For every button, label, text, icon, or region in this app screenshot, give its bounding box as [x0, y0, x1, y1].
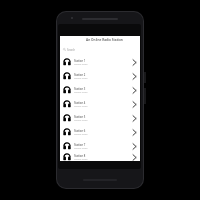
- other: Open station: [132, 73, 137, 80]
- other: Open station: [132, 143, 137, 150]
- staticText: Online radio: [74, 133, 88, 136]
- staticText: Station 1: [74, 59, 86, 63]
- button[interactable]: Station 5: [60, 111, 140, 125]
- staticText: Online radio: [74, 147, 88, 150]
- other: Open station: [132, 115, 137, 122]
- other: Open station: [132, 154, 137, 161]
- staticText: Online radio: [74, 119, 88, 122]
- staticText: Search: [67, 48, 76, 52]
- button[interactable]: Station 6: [60, 125, 140, 139]
- other: Open station: [132, 59, 137, 66]
- other: Search: [63, 48, 66, 51]
- staticText: Online radio: [74, 63, 88, 66]
- staticText: Station 4: [74, 101, 86, 105]
- staticText: Station 8: [74, 154, 86, 158]
- button[interactable]: Station 4: [60, 97, 140, 111]
- staticText: Online radio: [74, 91, 88, 94]
- staticText: An Online Radio Station: [86, 38, 123, 42]
- button[interactable]: Station 3: [60, 83, 140, 97]
- other: Open station: [132, 129, 137, 136]
- staticText: Station 7: [74, 143, 86, 147]
- other: Open station: [132, 87, 137, 94]
- staticText: Online radio: [74, 158, 88, 161]
- staticText: Online radio: [74, 105, 88, 108]
- staticText: Station 3: [74, 87, 86, 91]
- button[interactable]: Search: [60, 44, 140, 55]
- button[interactable]: Station 2: [60, 69, 140, 83]
- staticText: Station 2: [74, 73, 86, 77]
- other: Open station: [132, 101, 137, 108]
- button[interactable]: Station 1: [60, 55, 140, 69]
- staticText: Station 5: [74, 115, 86, 119]
- button[interactable]: Station 8: [60, 153, 140, 161]
- staticText: Online radio: [74, 77, 88, 80]
- staticText: Station 6: [74, 129, 86, 133]
- button[interactable]: Station 7: [60, 139, 140, 153]
